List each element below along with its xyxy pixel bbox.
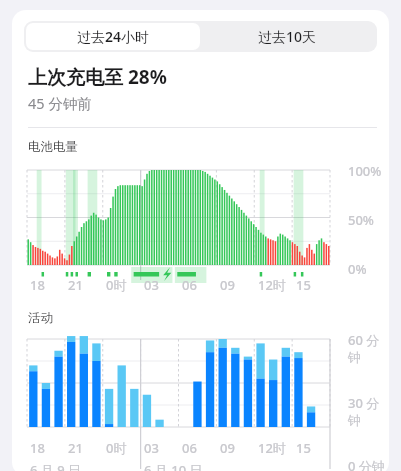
staticText: 09: [220, 439, 235, 457]
staticText: 06: [182, 276, 197, 294]
staticText: 0 分钟: [348, 457, 385, 471]
staticText: 09: [220, 276, 235, 294]
staticText: 18: [30, 276, 45, 294]
staticText: 50%: [348, 211, 374, 229]
staticText: 活动: [28, 310, 53, 326]
staticText: 12时: [258, 439, 286, 457]
staticText: 03: [144, 439, 159, 457]
button[interactable]: 电池电量图表: [12, 160, 389, 296]
staticText: 30 分钟: [348, 394, 389, 429]
staticText: 60 分钟: [348, 331, 389, 366]
staticText: 0%: [348, 260, 367, 278]
staticText: 12时: [258, 276, 286, 294]
button[interactable]: 活动图表: [12, 331, 389, 471]
staticText: 6 月 10 日: [144, 461, 203, 471]
staticText: 45 分钟前: [28, 93, 92, 113]
staticText: 过去24小时: [77, 27, 150, 46]
staticText: 0时: [106, 439, 127, 457]
staticText: 21: [68, 439, 83, 457]
button[interactable]: 过去10天: [200, 23, 375, 50]
staticText: 06: [182, 439, 197, 457]
staticText: 18: [30, 439, 45, 457]
staticText: 6 月 9 日: [30, 461, 82, 471]
staticText: 过去10天: [258, 27, 317, 46]
staticText: 电池电量: [28, 139, 78, 155]
staticText: 0时: [106, 276, 127, 294]
staticText: 15: [296, 276, 311, 294]
button[interactable]: 过去24小时: [26, 23, 200, 50]
staticText: 03: [144, 276, 159, 294]
staticText: 21: [68, 276, 83, 294]
staticText: 15: [296, 439, 311, 457]
staticText: 100%: [348, 162, 382, 180]
staticText: 上次充电至 28%: [28, 64, 167, 90]
